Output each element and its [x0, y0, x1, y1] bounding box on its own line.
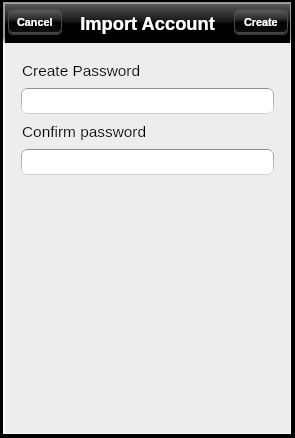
staticText: Confirm password — [22, 123, 147, 140]
button[interactable]: Cancel — [8, 9, 62, 33]
button[interactable]: Confirm password field — [21, 149, 274, 175]
staticText: Create Password — [22, 62, 141, 79]
staticText: Create — [244, 16, 278, 28]
staticText: Cancel — [17, 16, 53, 28]
button[interactable]: Create — [234, 9, 288, 33]
button[interactable]: Create password field — [21, 88, 274, 114]
staticText: Import Account — [80, 13, 215, 33]
